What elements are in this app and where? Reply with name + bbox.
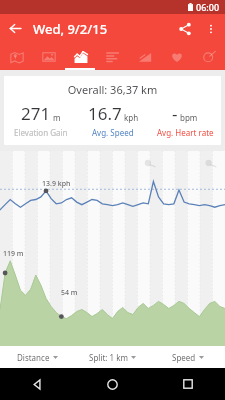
button[interactable]: 16.7 (77, 102, 149, 138)
staticText: Speed (172, 352, 196, 363)
staticText: Distance (17, 352, 50, 363)
button[interactable]: Splits (97, 43, 129, 70)
button[interactable]: Photos (33, 43, 65, 70)
staticText: 271 (21, 102, 51, 125)
button[interactable]: More options (199, 17, 223, 41)
button[interactable]: Share (171, 15, 199, 43)
button[interactable]: Speed (150, 346, 225, 368)
button[interactable]: 271 (4, 102, 77, 138)
button[interactable]: Distance (0, 346, 75, 368)
staticText: Avg. Speed (92, 127, 134, 138)
staticText: Elevation Gain (14, 127, 68, 138)
staticText: 06:00 (196, 1, 220, 13)
button[interactable]: Home (75, 368, 150, 400)
button[interactable]: Laps (193, 43, 225, 70)
button[interactable]: Recents (150, 368, 225, 400)
staticText: kph (124, 112, 139, 123)
staticText: Split: 1 km (89, 352, 128, 363)
button[interactable]: Map (0, 43, 33, 70)
staticText: 13.9 kph (42, 179, 71, 189)
staticText: 119 m (3, 249, 24, 259)
button[interactable]: Split: 1 km (75, 346, 150, 368)
button[interactable]: Elevation (129, 43, 161, 70)
button[interactable]: Heart rate (161, 43, 193, 70)
staticText: Overall: 36,37 km (4, 82, 221, 97)
button[interactable]: Back (0, 14, 30, 43)
button[interactable]: - (149, 102, 221, 138)
staticText: bpm (180, 112, 198, 123)
staticText: 54 m (61, 288, 78, 298)
staticText: m (53, 112, 61, 123)
button[interactable]: Back (0, 368, 75, 400)
staticText: Avg. Heart rate (157, 127, 214, 138)
staticText: - (172, 102, 178, 125)
staticText: Wed, 9/2/15 (33, 20, 108, 38)
staticText: 16.7 (88, 102, 122, 125)
button[interactable]: Charts (65, 43, 97, 70)
